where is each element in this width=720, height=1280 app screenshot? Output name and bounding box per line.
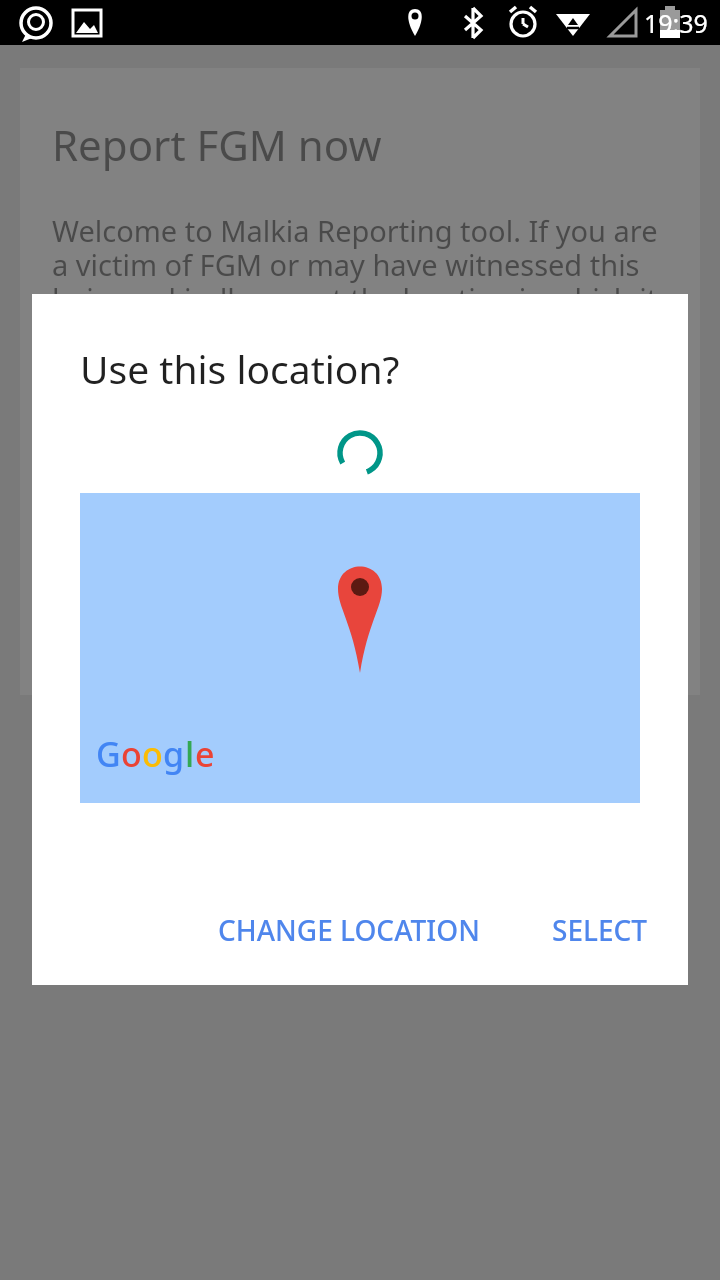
staticText: o (142, 731, 163, 777)
staticText: e (195, 731, 215, 777)
staticText: g (163, 731, 185, 777)
staticText: 19:39 (644, 6, 708, 40)
staticText: SELECT (552, 911, 648, 949)
button[interactable]: CHANGE LOCATION (202, 897, 496, 963)
staticText: o (121, 731, 142, 777)
staticText: CHANGE LOCATION (218, 911, 480, 949)
staticText: G (96, 731, 121, 777)
button[interactable]: SELECT (536, 897, 664, 963)
staticText: Use this location? (80, 342, 400, 395)
button[interactable]: Map preview (80, 493, 640, 803)
staticText: Welcome to Malkia Reporting tool. If you… (52, 211, 676, 352)
staticText: Report FGM now (52, 116, 382, 173)
staticText: l (185, 731, 195, 777)
